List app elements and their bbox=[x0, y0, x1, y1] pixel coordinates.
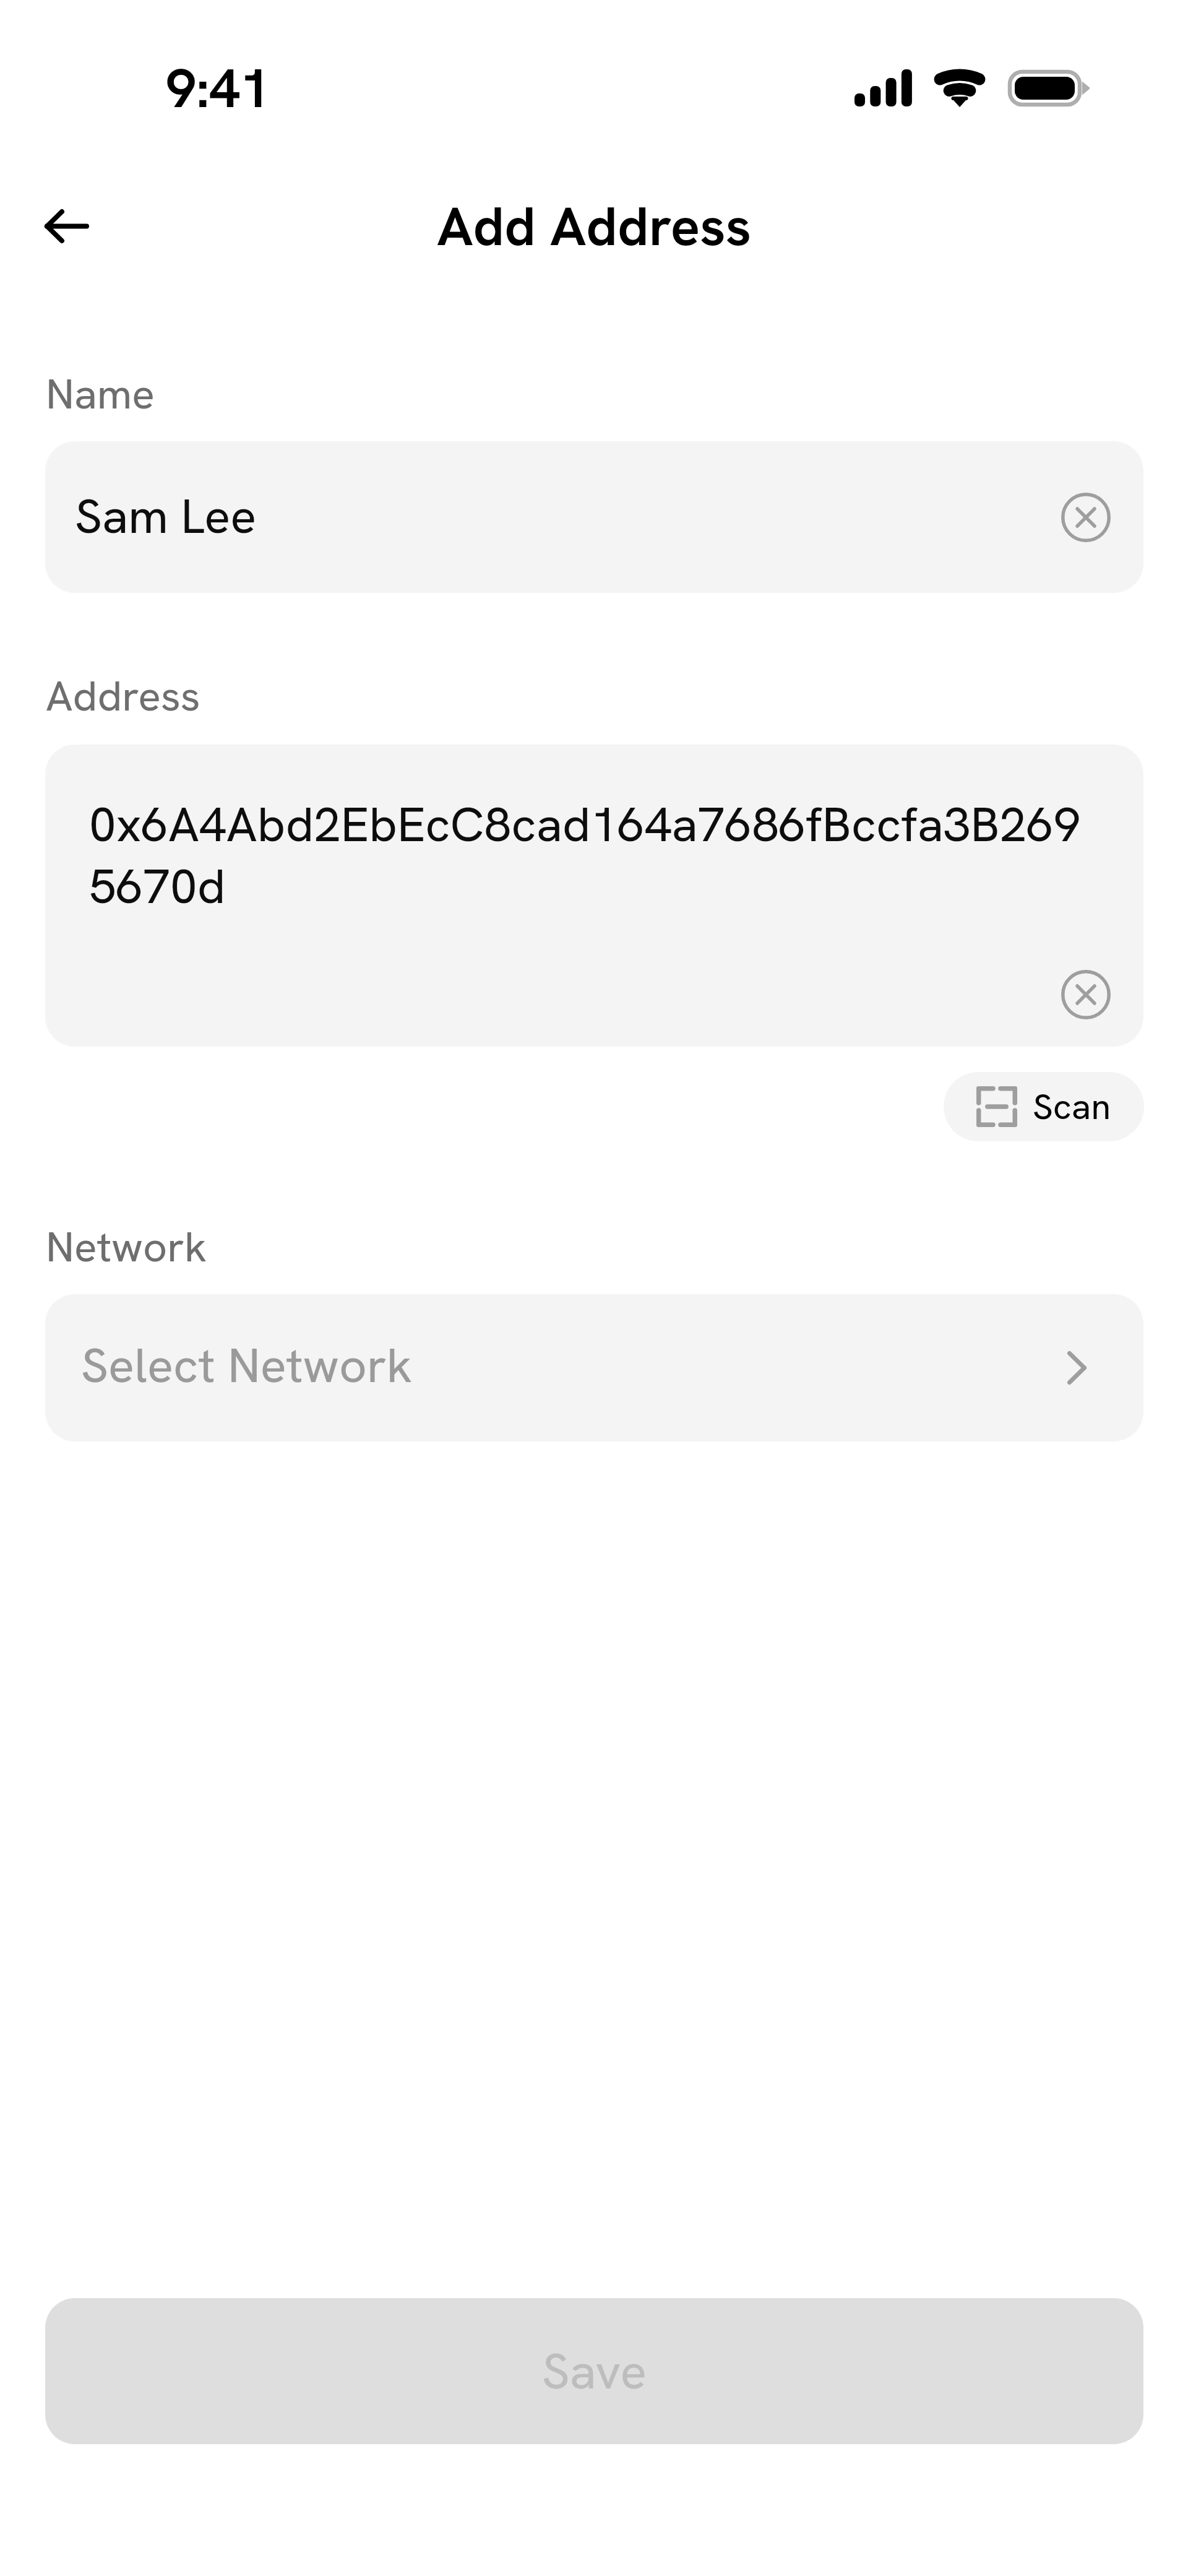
staticText: Select Network bbox=[81, 1334, 413, 1397]
staticText: 9:41 bbox=[166, 53, 270, 124]
staticText: Save bbox=[542, 2340, 647, 2403]
button[interactable]: 0x6A4Abd2EbEcC8cad164a7686fBccfa3B269567… bbox=[45, 745, 1143, 1047]
button[interactable]: Clear address bbox=[1061, 970, 1111, 1019]
staticText: Address bbox=[46, 668, 200, 724]
button[interactable]: Scan QR code bbox=[944, 1072, 1144, 1141]
staticText: Scan bbox=[1033, 1083, 1111, 1130]
staticText: Network bbox=[46, 1219, 207, 1274]
staticText: Sam Lee bbox=[75, 485, 257, 548]
button[interactable]: Sam Lee bbox=[45, 441, 1143, 593]
button[interactable]: Save bbox=[45, 2298, 1143, 2444]
button[interactable]: Back bbox=[22, 181, 111, 270]
button[interactable]: Select Network bbox=[45, 1294, 1143, 1441]
button[interactable]: Clear name bbox=[1061, 493, 1111, 542]
staticText: Name bbox=[46, 366, 155, 421]
staticText: Add Address bbox=[437, 191, 752, 262]
staticText: 0x6A4Abd2EbEcC8cad164a7686fBccfa3B269567… bbox=[89, 793, 1100, 917]
